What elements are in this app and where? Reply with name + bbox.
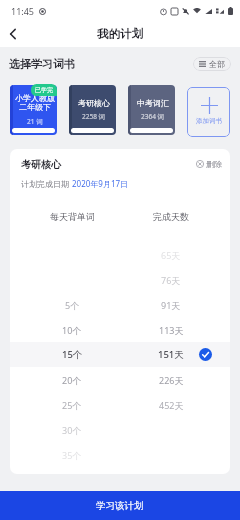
button[interactable]: 考研核心: [69, 85, 116, 135]
staticText: 已学完: [35, 86, 53, 94]
staticText: 35个: [62, 449, 82, 461]
button[interactable]: 全部: [193, 57, 231, 71]
staticText: 151天: [158, 348, 184, 361]
button[interactable]: 20个: [10, 367, 230, 392]
staticText: 添加词书: [196, 117, 222, 125]
staticText: 2364 词: [141, 112, 165, 121]
button[interactable]: 中考词汇: [128, 85, 175, 135]
staticText: 11:45: [11, 5, 35, 17]
staticText: 删除: [206, 159, 222, 169]
button[interactable]: 添加词书: [187, 87, 230, 137]
staticText: 21 词: [27, 117, 43, 126]
staticText: 20个: [62, 374, 82, 386]
staticText: 考研核心: [78, 98, 110, 108]
button[interactable]: 25个: [10, 392, 230, 417]
staticText: 我的计划: [97, 27, 143, 41]
staticText: 小学人教版 二年级下: [15, 93, 55, 113]
staticText: 完成天数: [153, 211, 189, 222]
staticText: 全部: [209, 59, 225, 69]
button[interactable]: 学习该计划: [0, 491, 240, 520]
staticText: 113天: [159, 324, 184, 336]
staticText: 65天: [161, 249, 181, 261]
staticText: 选择学习词书: [9, 57, 75, 71]
staticText: 中考词汇: [137, 98, 169, 108]
staticText: 15个: [62, 348, 83, 361]
button[interactable]: Back: [0, 21, 26, 47]
staticText: 30个: [62, 424, 82, 436]
button[interactable]: 10个: [10, 317, 230, 342]
staticText: 每天背单词: [50, 211, 95, 222]
staticText: 25个: [62, 399, 82, 411]
staticText: 452天: [159, 399, 184, 411]
staticText: 76天: [161, 274, 181, 286]
staticText: 10个: [62, 324, 82, 336]
staticText: 学习该计划: [96, 500, 144, 512]
button[interactable]: 小学人教版 二年级下: [10, 85, 57, 135]
button[interactable]: 5个: [10, 292, 230, 317]
staticText: 计划完成日期: [21, 178, 72, 189]
staticText: 226天: [159, 374, 184, 386]
staticText: 2258 词: [82, 112, 106, 121]
staticText: 2020年9月17日: [72, 178, 129, 189]
staticText: 5个: [65, 299, 80, 311]
button[interactable]: 删除: [196, 158, 222, 169]
staticText: 考研核心: [21, 158, 61, 171]
button[interactable]: 76天: [10, 267, 230, 292]
button[interactable]: 30个: [10, 417, 230, 442]
button[interactable]: 15个: [10, 342, 230, 367]
staticText: 91天: [161, 299, 181, 311]
